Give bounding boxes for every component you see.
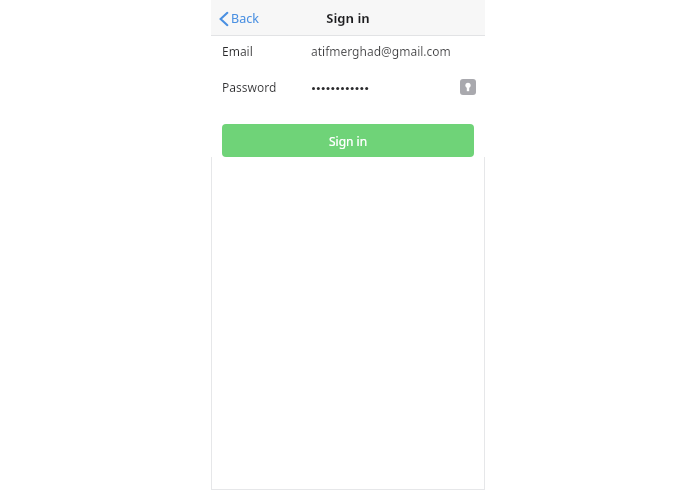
button[interactable]: Sign in bbox=[222, 124, 474, 157]
staticText: Back bbox=[231, 10, 259, 27]
staticText: Email bbox=[222, 43, 253, 59]
button[interactable]: Password bbox=[211, 72, 485, 102]
staticText: Sign in bbox=[326, 9, 370, 27]
button[interactable]: Back bbox=[218, 6, 261, 31]
staticText: Password bbox=[222, 79, 277, 95]
staticText: Sign in bbox=[329, 133, 368, 149]
button[interactable]: Email bbox=[211, 36, 485, 66]
staticText: atifmerghad@gmail.com bbox=[311, 43, 451, 59]
button[interactable]: Autofill password bbox=[460, 79, 476, 95]
